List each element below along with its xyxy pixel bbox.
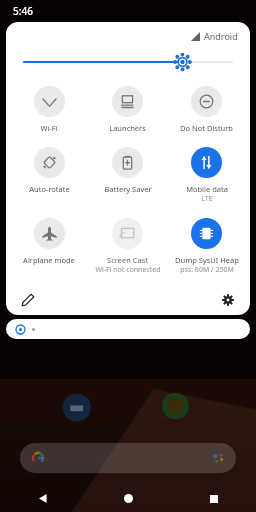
staticText: Android: [204, 30, 238, 42]
button[interactable]: Do Not Disturb: [167, 86, 246, 133]
button[interactable]: Battery Saver: [88, 147, 167, 194]
button[interactable]: Recents: [171, 485, 256, 512]
button[interactable]: Settings: [218, 290, 238, 310]
button[interactable]: Dump SysUI Heap: [167, 218, 246, 275]
button[interactable]: Home: [86, 485, 171, 512]
button[interactable]: [6, 319, 250, 339]
button[interactable]: Launchers: [88, 86, 167, 133]
button[interactable]: Screen Cast: [88, 218, 167, 275]
staticText: Screen Cast: [107, 255, 148, 265]
staticText: Do Not Disturb: [180, 123, 233, 133]
staticText: Wi-Fi: [40, 123, 58, 133]
staticText: Airplane mode: [23, 255, 75, 265]
button[interactable]: Airplane mode: [10, 218, 88, 265]
staticText: pss: 80M / 250M: [180, 265, 234, 275]
staticText: LTE: [201, 194, 213, 204]
staticText: Mobile data: [186, 184, 228, 194]
staticText: Battery Saver: [104, 184, 152, 194]
staticText: Launchers: [109, 123, 146, 133]
button[interactable]: Wi-Fi: [10, 86, 88, 133]
staticText: Wi-Fi not connected: [95, 265, 161, 275]
staticText: Dump SysUI Heap: [175, 255, 239, 265]
button[interactable]: Edit tiles: [18, 290, 38, 310]
button[interactable]: Back: [0, 485, 86, 512]
button[interactable]: Search: [20, 443, 236, 473]
button[interactable]: Brightness: [24, 52, 232, 72]
button[interactable]: Mobile data: [167, 147, 246, 204]
staticText: 5:46: [13, 4, 33, 18]
button[interactable]: Auto-rotate: [10, 147, 88, 194]
staticText: Auto-rotate: [29, 184, 70, 194]
